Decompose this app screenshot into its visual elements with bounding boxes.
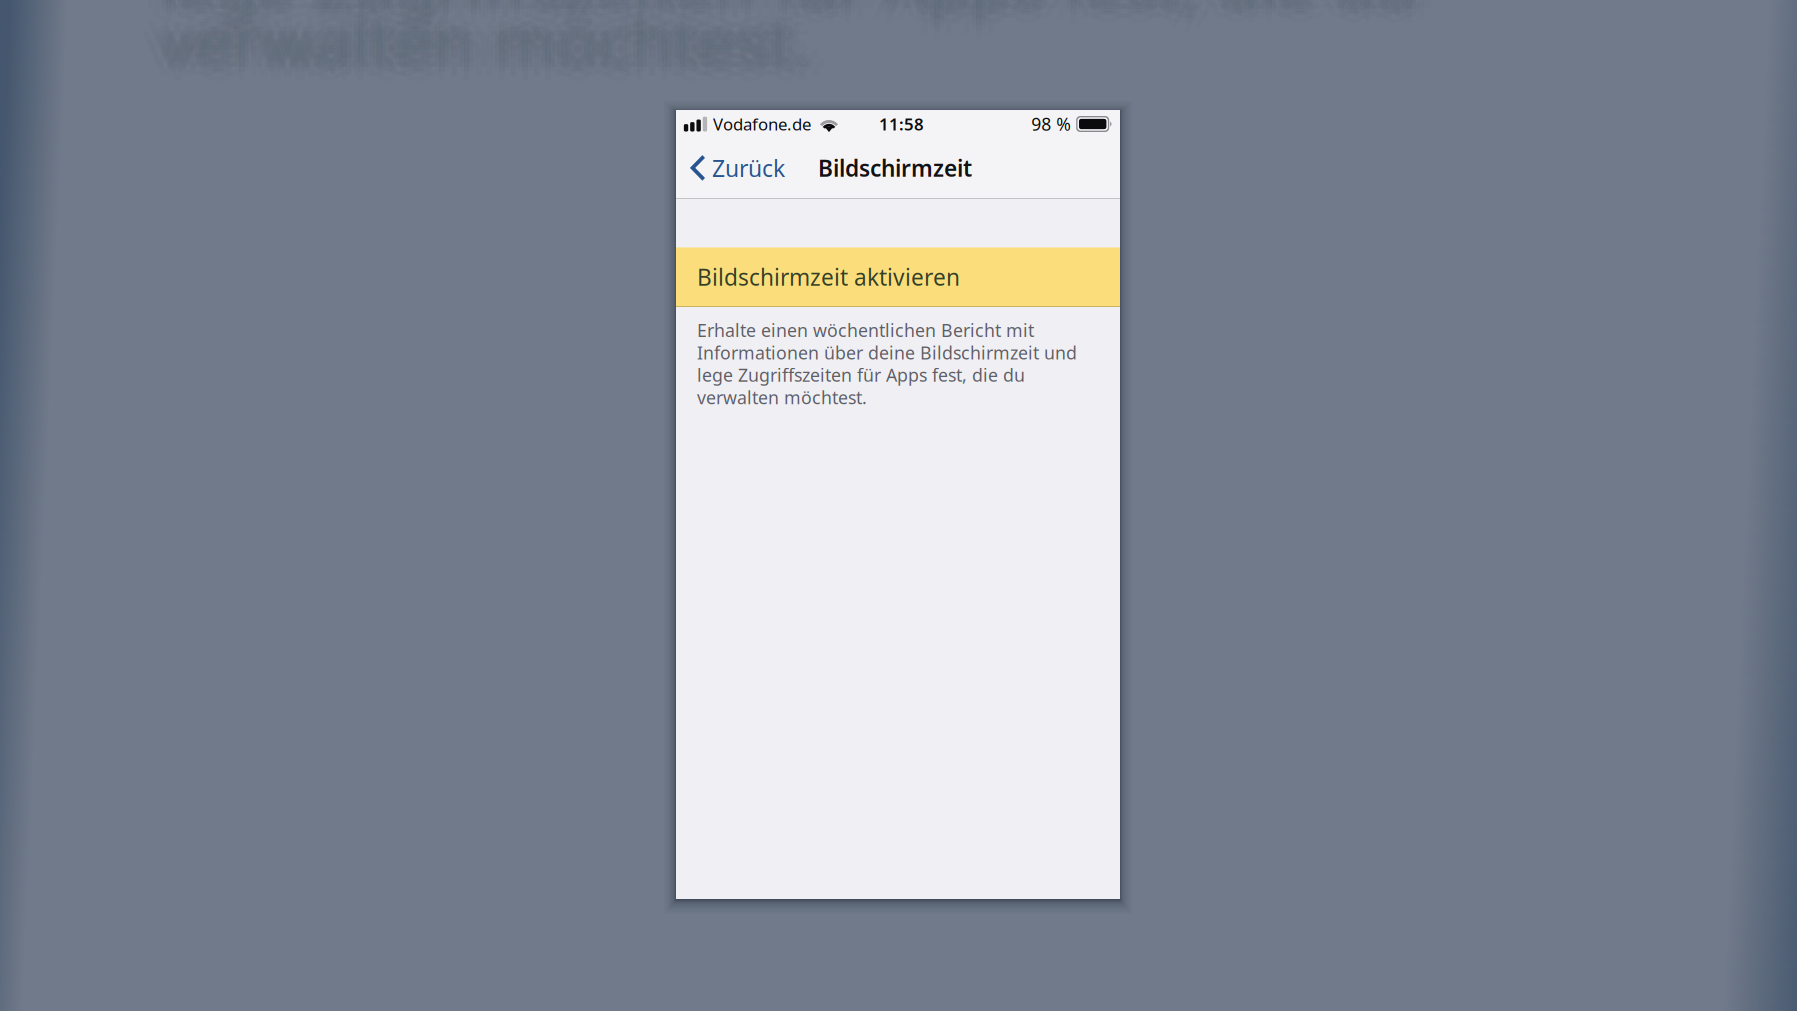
staticText: verwalten möchtest. [148,3,800,96]
staticText: verwalten möchtest. [160,0,812,81]
staticText: verwalten möchtest. [153,0,805,87]
staticText: verwalten möchtest. [160,0,812,87]
staticText: lege Zugriffszeiten für Apps fest, die d… [148,0,1406,20]
staticText: lege Zugriffszeiten für Apps fest, die d… [148,0,1406,38]
staticText: lege Zugriffszeiten für Apps fest, die d… [160,0,1418,15]
staticText: lege Zugriffszeiten für Apps fest, die d… [153,0,1411,29]
staticText: verwalten möchtest. [160,0,812,73]
button[interactable]: Zurück [676,138,793,198]
staticText: verwalten möchtest. [156,0,808,83]
button[interactable]: Bildschirmzeit aktivieren [676,247,1120,307]
staticText: lege Zugriffszeiten für Apps fest, die d… [156,0,1414,25]
staticText: lege Zugriffszeiten für Apps fest, die d… [164,0,1422,25]
staticText: lege Zugriffszeiten für Apps fest, die d… [160,0,1418,23]
staticText: lege Zugriffszeiten für Apps fest, die d… [172,0,1430,20]
staticText: verwalten möchtest. [178,0,830,87]
staticText: lege Zugriffszeiten für Apps fest, die d… [178,0,1436,29]
staticText: lege Zugriffszeiten für Apps fest, die d… [164,0,1422,33]
staticText: lege Zugriffszeiten für Apps fest, die d… [160,0,1418,35]
staticText: verwalten möchtest. [164,0,816,83]
staticText: lege Zugriffszeiten für Apps fest, die d… [172,0,1430,38]
staticText: 98 % [1031,112,1071,136]
staticText: Bildschirmzeit aktivieren [697,262,960,292]
staticText: verwalten möchtest. [148,0,800,78]
staticText: lege Zugriffszeiten für Apps fest, die d… [142,0,1400,29]
staticText: Bildschirmzeit [818,153,972,183]
staticText: lege Zugriffszeiten für Apps fest, die d… [156,0,1414,33]
staticText: lege Zugriffszeiten für Apps fest, die d… [167,0,1425,29]
staticText: verwalten möchtest. [160,0,812,93]
staticText: verwalten möchtest. [142,0,794,87]
staticText: 11:58 [879,113,924,135]
staticText: lege Zugriffszeiten für Apps fest, die d… [160,0,1418,29]
staticText: lege Zugriffszeiten für Apps fest, die d… [160,0,1418,43]
staticText: verwalten möchtest. [164,0,816,91]
staticText: verwalten möchtest. [156,0,808,91]
staticText: verwalten möchtest. [167,0,819,87]
staticText: verwalten möchtest. [172,3,824,96]
staticText: Zurück [712,152,785,184]
staticText: verwalten möchtest. [172,0,824,78]
staticText: verwalten möchtest. [160,8,812,101]
staticText: Vodafone.de [713,113,811,135]
staticText: Erhalte einen wöchentlichen Bericht mit … [697,318,1077,409]
